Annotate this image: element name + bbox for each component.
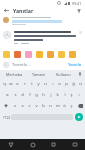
button[interactable]: a [3, 89, 11, 100]
staticText: o [58, 81, 61, 87]
button[interactable]: ö [61, 100, 68, 111]
button[interactable]: x [19, 100, 26, 111]
staticText: ı [52, 81, 54, 87]
staticText: w [9, 81, 13, 87]
staticText: e [16, 81, 19, 87]
button[interactable]: Voice input [76, 70, 83, 78]
button[interactable] [0, 15, 85, 28]
button[interactable]: Emoji [58, 51, 65, 58]
staticText: u [44, 81, 47, 87]
button[interactable]: Backspace [75, 100, 85, 111]
staticText: ?123 [3, 115, 11, 120]
button[interactable]: Yanıtla [68, 62, 82, 68]
button[interactable]: p [63, 78, 70, 89]
button[interactable]: f [26, 89, 33, 100]
button[interactable]: Merhaba [2, 70, 26, 78]
staticText: l [64, 92, 66, 98]
button[interactable]: l [61, 89, 68, 100]
staticText: Tamam [32, 72, 46, 77]
button[interactable]: Home [22, 139, 43, 150]
staticText: p [65, 81, 68, 87]
staticText: Tweetle... [12, 62, 31, 68]
button[interactable]: ş [68, 89, 75, 100]
button[interactable]: Kullanıcı [51, 70, 76, 78]
button[interactable]: Shift [0, 100, 11, 111]
staticText: n [49, 103, 52, 109]
staticText: j [50, 92, 52, 98]
staticText: r [24, 81, 26, 87]
staticText: c [28, 103, 31, 109]
staticText: m [56, 103, 60, 109]
staticText: 09:41 [72, 1, 82, 6]
button[interactable]: Recents [43, 139, 64, 150]
button[interactable]: Emoji [69, 51, 76, 58]
button[interactable]: Emoji [14, 51, 21, 58]
button[interactable]: j [47, 89, 54, 100]
staticText: z [14, 103, 16, 109]
button[interactable]: u [42, 78, 49, 89]
staticText: d [21, 92, 24, 98]
button[interactable]: Tweetle... [12, 62, 68, 68]
button[interactable]: y [35, 78, 42, 89]
button[interactable]: i [75, 89, 82, 100]
button[interactable]: Emoji [36, 51, 43, 58]
button[interactable]: z [11, 100, 19, 111]
staticText: q [3, 81, 6, 87]
staticText: h [42, 92, 45, 98]
button[interactable]: Hide keyboard [64, 139, 85, 150]
button[interactable]: h [40, 89, 47, 100]
staticText: t [31, 81, 33, 87]
staticText: Yanıtla [68, 62, 82, 68]
button[interactable]: d [19, 89, 26, 100]
button[interactable]: n [47, 100, 54, 111]
staticText: ç [70, 103, 73, 109]
button[interactable]: o [56, 78, 63, 89]
button[interactable]: Emoji [25, 51, 32, 58]
button[interactable] [0, 28, 85, 49]
button[interactable]: t [28, 78, 35, 89]
button[interactable]: ç [68, 100, 75, 111]
staticText: v [35, 103, 38, 109]
button[interactable]: Back [3, 7, 10, 14]
button[interactable]: ü [77, 78, 84, 89]
button[interactable]: Emoji [3, 51, 10, 58]
button[interactable]: Back [0, 139, 22, 150]
button[interactable]: m [54, 100, 61, 111]
staticText: i [78, 92, 80, 98]
staticText: ü [79, 81, 82, 87]
button[interactable]: Emoji [47, 51, 54, 58]
button[interactable]: ?123 [2, 112, 11, 122]
staticText: f [29, 92, 31, 98]
button[interactable]: g [33, 89, 40, 100]
button[interactable]: Tamam [26, 70, 51, 78]
staticText: y [37, 81, 40, 87]
button[interactable]: ğ [70, 78, 77, 89]
button[interactable]: b [40, 100, 47, 111]
button[interactable]: k [54, 89, 61, 100]
button[interactable]: v [33, 100, 40, 111]
staticText: g [35, 92, 38, 98]
staticText: s [14, 92, 17, 98]
button[interactable]: ı [49, 78, 56, 89]
staticText: a [6, 92, 9, 98]
button[interactable]: c [26, 100, 33, 111]
button[interactable]: w [7, 78, 14, 89]
staticText: x [21, 103, 24, 109]
button[interactable]: Send [75, 113, 83, 121]
staticText: ö [63, 103, 66, 109]
staticText: ğ [72, 81, 75, 87]
staticText: b [42, 103, 45, 109]
staticText: Yanıtlar [13, 7, 34, 14]
staticText: k [56, 92, 59, 98]
staticText: Kullanıcı [56, 72, 71, 77]
staticText: Merhaba [6, 72, 23, 77]
button[interactable]: r [21, 78, 28, 89]
button[interactable]: Filter [75, 7, 82, 14]
staticText: ş [70, 92, 73, 98]
button[interactable]: q [1, 78, 7, 89]
button[interactable]: e [14, 78, 21, 89]
button[interactable]: s [11, 89, 19, 100]
